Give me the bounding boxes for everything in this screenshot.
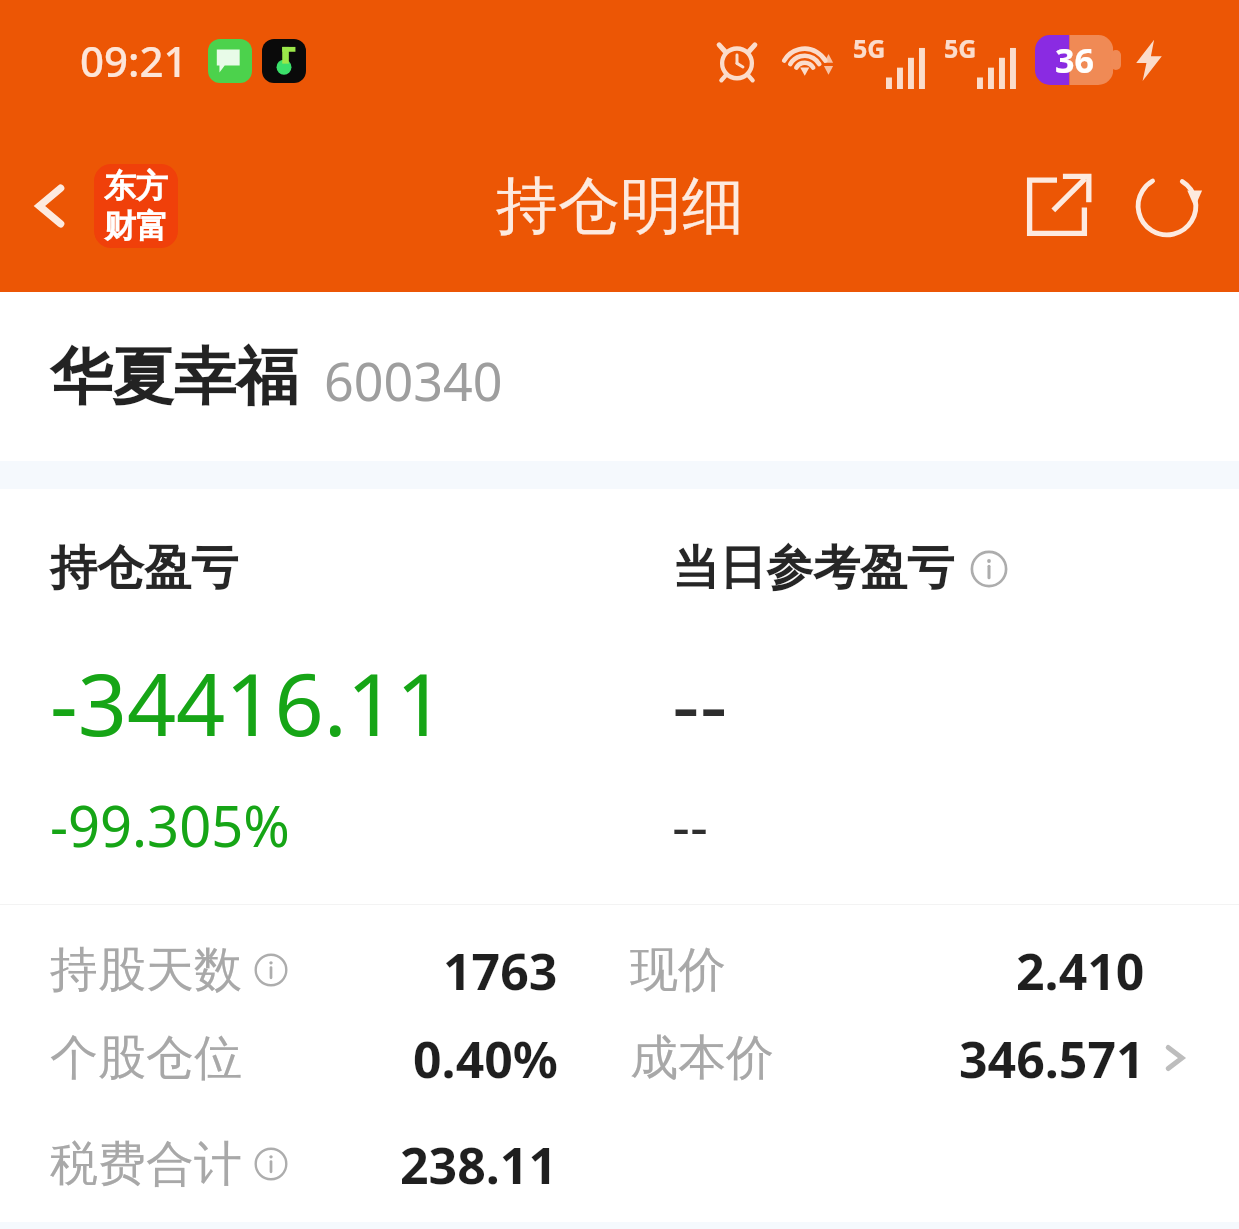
staticText: 成本价 <box>630 1028 774 1088</box>
button[interactable]: Back <box>12 167 90 245</box>
staticText: 36 <box>1055 37 1094 83</box>
button[interactable]: 成本价 <box>630 1025 1191 1091</box>
staticText: 持仓明细 <box>496 167 744 245</box>
button[interactable]: Share <box>1009 158 1105 254</box>
button[interactable]: 税费合计 <box>50 1131 558 1197</box>
staticText: 2.410 <box>1016 937 1145 1003</box>
staticText: -- <box>672 644 728 761</box>
staticText: -34416.11 <box>50 644 446 761</box>
button[interactable]: 个股仓位 <box>50 1025 558 1091</box>
staticText: 个股仓位 <box>50 1028 242 1088</box>
staticText: 税费合计 <box>50 1134 242 1194</box>
button[interactable]: 持股天数 <box>50 937 558 1003</box>
staticText: 东方 <box>104 166 168 206</box>
staticText: 5G <box>853 31 886 65</box>
staticText: -- <box>672 787 709 863</box>
button[interactable]: 现价 <box>630 937 1191 1003</box>
staticText: 财富 <box>104 206 168 246</box>
staticText: 09:21 <box>80 32 188 89</box>
staticText: 238.11 <box>400 1131 558 1197</box>
button[interactable]: East Money logo <box>94 164 178 248</box>
staticText: 华夏幸福 <box>50 338 298 416</box>
staticText: 持股天数 <box>50 940 242 1000</box>
staticText: 600340 <box>324 345 503 416</box>
staticText: 当日参考盈亏 <box>672 539 954 598</box>
staticText: 1763 <box>443 937 558 1003</box>
staticText: 现价 <box>630 940 726 1000</box>
staticText: 0.40% <box>413 1025 558 1091</box>
staticText: 5G <box>944 31 977 65</box>
staticText: -99.305% <box>50 787 290 863</box>
staticText: 346.571 <box>959 1025 1145 1091</box>
button[interactable]: Refresh <box>1119 158 1215 254</box>
staticText: 持仓盈亏 <box>50 539 238 598</box>
